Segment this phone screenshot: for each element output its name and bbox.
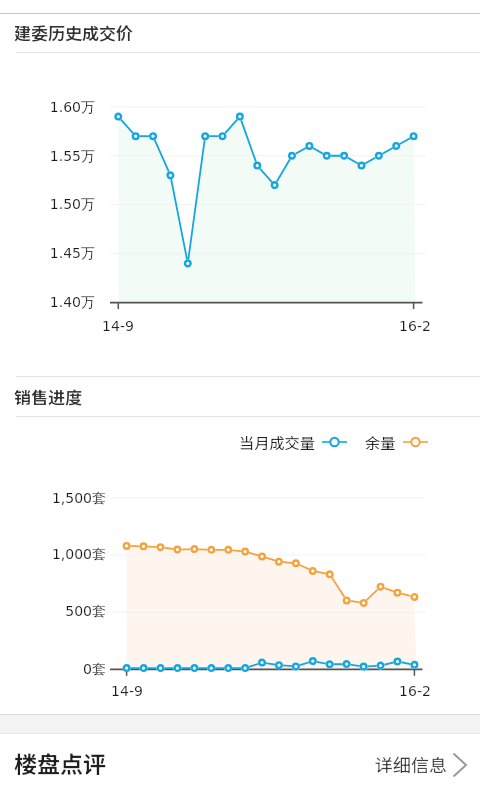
staticText: 楼盘点评	[14, 746, 106, 779]
button[interactable]: 楼盘点评	[0, 740, 480, 790]
button[interactable]: 建委历史成交价	[14, 20, 133, 45]
staticText: 1.50万	[0, 196, 95, 214]
staticText: 14-9	[78, 318, 158, 334]
staticText: 当月成交量	[239, 431, 315, 453]
button[interactable]: 销售进度	[14, 384, 82, 409]
other: More details	[452, 752, 467, 778]
staticText: 建委历史成交价	[14, 20, 133, 45]
button[interactable]: 当月成交量	[239, 431, 347, 453]
staticText: 1.60万	[0, 99, 95, 117]
staticText: 1,000套	[0, 546, 106, 564]
staticText: 14-9	[87, 683, 167, 699]
staticText: 16-2	[375, 683, 455, 699]
staticText: 16-2	[375, 318, 455, 334]
staticText: 1.45万	[0, 245, 95, 263]
staticText: 销售进度	[14, 384, 82, 409]
staticText: 0套	[0, 661, 106, 679]
button[interactable]: 余量	[365, 431, 428, 453]
staticText: 详细信息	[375, 751, 447, 777]
staticText: 余量	[365, 431, 396, 453]
staticText: 500套	[0, 603, 106, 621]
staticText: 1,500套	[0, 490, 106, 508]
staticText: 1.40万	[0, 294, 95, 312]
staticText: 1.55万	[0, 148, 95, 166]
